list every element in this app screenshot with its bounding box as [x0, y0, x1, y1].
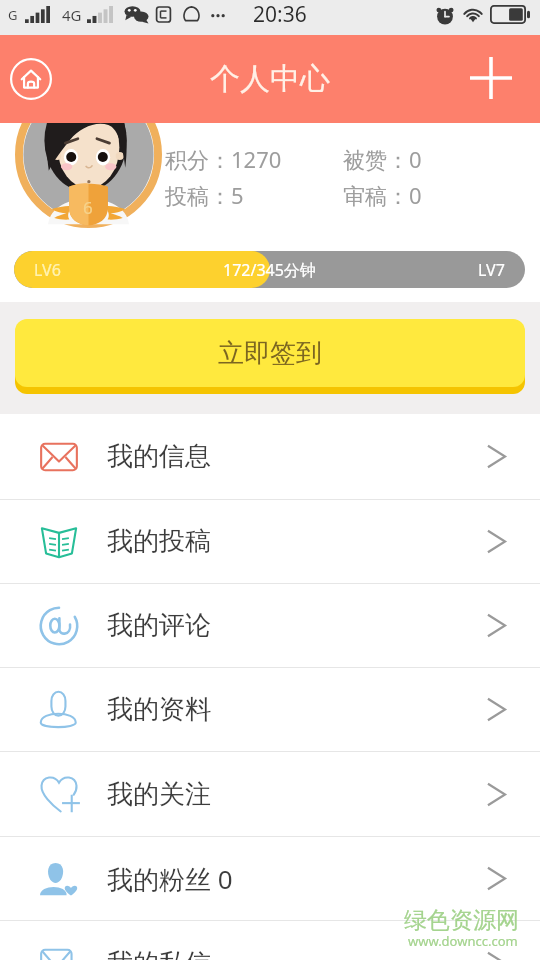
staticText: 4G	[62, 5, 82, 25]
staticText: www.downcc.com	[408, 932, 518, 950]
staticText: 6	[83, 196, 93, 219]
staticText: 我的信息	[107, 440, 211, 473]
button[interactable]: 我的资料	[0, 668, 540, 751]
button[interactable]: 我的信息	[0, 414, 540, 499]
button[interactable]: 我的粉丝 0	[0, 837, 540, 920]
staticText: LV7	[478, 259, 505, 281]
staticText: 被赞：0	[343, 144, 422, 174]
staticText: 我的投稿	[107, 525, 211, 558]
button[interactable]: 我的关注	[0, 752, 540, 836]
staticText: 个人中心	[210, 60, 330, 98]
staticText: 我的资料	[107, 693, 211, 726]
staticText: 绿色资源网	[404, 906, 519, 935]
staticText: 20:36	[253, 0, 307, 29]
staticText: G	[8, 6, 18, 24]
button[interactable]: 我的投稿	[0, 500, 540, 583]
staticText: 审稿：0	[343, 180, 422, 210]
staticText: LV6	[34, 259, 61, 281]
staticText: 立即签到	[218, 337, 322, 370]
button[interactable]: 立即签到	[15, 319, 525, 387]
staticText: 我的私信	[107, 947, 211, 960]
staticText: 我的粉丝 0	[107, 861, 233, 897]
staticText: 投稿：5	[165, 180, 244, 210]
button[interactable]: 我的私信	[0, 921, 540, 960]
button[interactable]: Home	[8, 56, 54, 102]
staticText: 我的评论	[107, 609, 211, 642]
staticText: 172/345分钟	[223, 259, 316, 281]
staticText: 我的关注	[107, 778, 211, 811]
button[interactable]: 我的评论	[0, 584, 540, 667]
staticText: 积分：1270	[165, 144, 282, 174]
button[interactable]: Add	[467, 54, 515, 102]
